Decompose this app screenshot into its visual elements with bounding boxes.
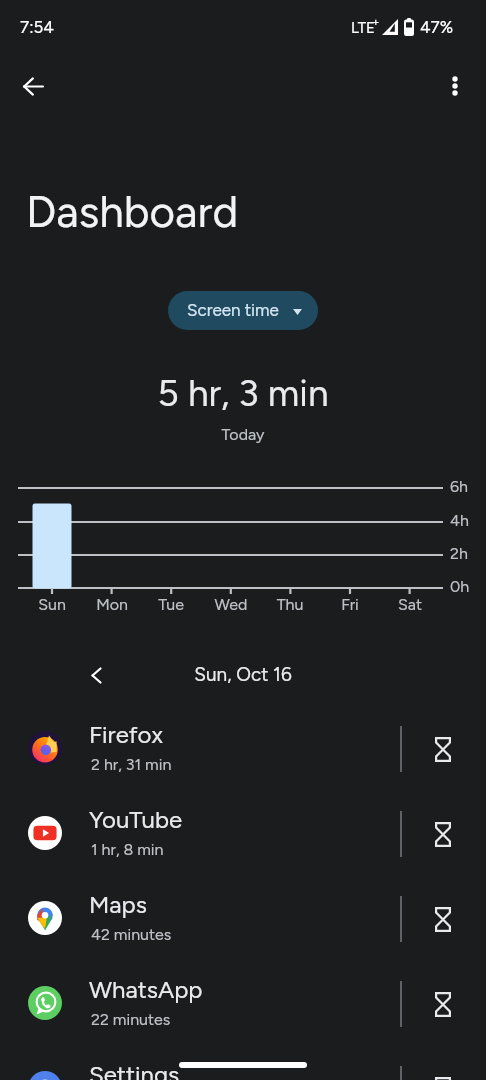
staticText: 42 minutes: [91, 925, 172, 944]
staticText: 2 hr, 31 min: [91, 755, 172, 774]
button[interactable]: Settings: [0, 1046, 486, 1080]
staticText: 47%: [420, 17, 454, 37]
staticText: Settings: [89, 1060, 180, 1080]
staticText: LTE: [351, 19, 375, 37]
staticText: Maps: [89, 890, 147, 919]
staticText: Sun, Oct 16: [0, 663, 486, 686]
staticText: Thu: [260, 595, 320, 614]
button[interactable]: More options: [431, 62, 479, 110]
staticText: 0h: [450, 577, 470, 596]
staticText: 1 hr, 8 min: [91, 840, 164, 859]
button[interactable]: App timer for Firefox: [419, 725, 467, 773]
staticText: 6h: [450, 477, 468, 496]
button[interactable]: Screen time: [168, 291, 318, 330]
button[interactable]: App timer for Settings: [419, 1065, 467, 1080]
staticText: Mon: [82, 595, 142, 614]
staticText: Today: [0, 425, 486, 444]
button[interactable]: App timer for Maps: [419, 895, 467, 943]
staticText: 7:54: [20, 17, 54, 37]
button[interactable]: App timer for WhatsApp: [419, 980, 467, 1028]
staticText: 2h: [450, 544, 468, 563]
staticText: Firefox: [89, 720, 163, 749]
staticText: Tue: [141, 595, 201, 614]
staticText: Sat: [380, 595, 440, 614]
button[interactable]: YouTube: [0, 791, 486, 876]
staticText: 22 minutes: [91, 1010, 171, 1029]
staticText: +: [372, 15, 380, 29]
staticText: Dashboard: [26, 185, 239, 238]
staticText: 4h: [450, 511, 469, 530]
staticText: 5 hr, 3 min: [0, 371, 486, 415]
staticText: YouTube: [89, 805, 183, 834]
staticText: WhatsApp: [89, 975, 203, 1004]
button[interactable]: Maps: [0, 876, 486, 961]
button[interactable]: WhatsApp: [0, 961, 486, 1046]
button[interactable]: Previous day: [75, 654, 117, 696]
staticText: Sun: [22, 595, 82, 614]
button[interactable]: Back: [9, 62, 57, 110]
staticText: Wed: [201, 595, 261, 614]
button[interactable]: App timer for YouTube: [419, 810, 467, 858]
staticText: Screen time: [187, 300, 279, 320]
staticText: Fri: [320, 595, 380, 614]
button[interactable]: Firefox: [0, 706, 486, 791]
